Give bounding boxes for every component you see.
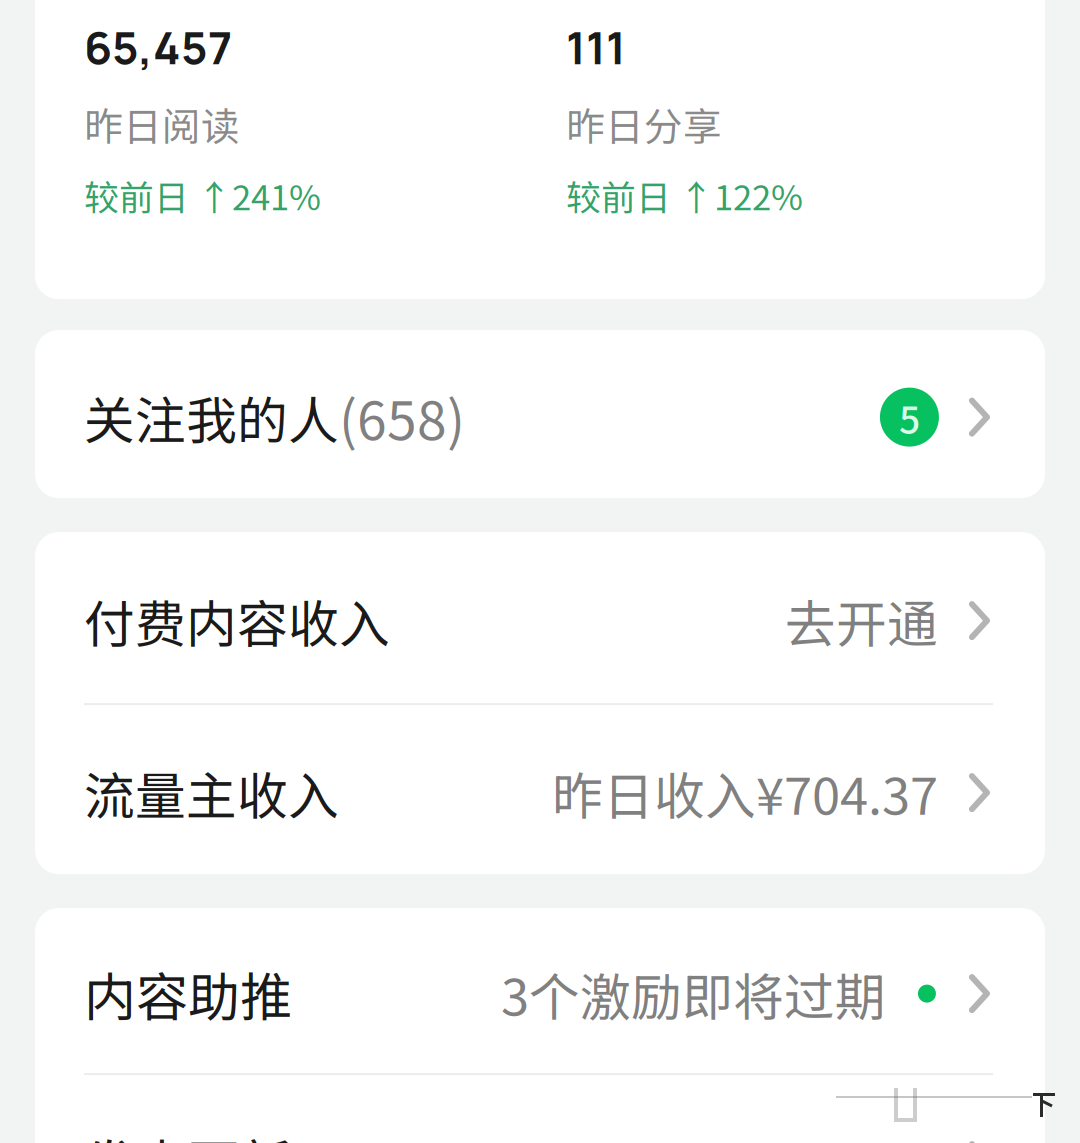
staticText: 内容助推 [84, 956, 292, 1031]
staticText: 较前日 ↑241% [84, 170, 321, 220]
button[interactable]: 内容助推 [35, 908, 1045, 1073]
staticText: 昨日收入¥704.37 [552, 756, 938, 829]
staticText: 关注我的人 [84, 380, 339, 454]
button[interactable]: 付费内容收入 [35, 532, 1045, 703]
staticText: 付费内容收入 [84, 584, 390, 657]
staticText: 3个激励即将过期 [501, 957, 886, 1030]
staticText: (658) [339, 378, 465, 456]
staticText: 流量主收入 [84, 756, 339, 829]
button[interactable]: 发表更新 [35, 1075, 1045, 1143]
button[interactable]: 流量主收入 [35, 705, 1045, 874]
staticText: 较前日 ↑122% [566, 170, 803, 220]
staticText: 昨日分享 [566, 96, 722, 152]
staticText: 昨日阅读 [84, 96, 240, 152]
staticText: 65,457 [84, 16, 232, 78]
button[interactable]: 关注我的人 [35, 330, 1045, 498]
staticText: 去开通 [785, 584, 938, 657]
staticText: 5 [899, 390, 920, 444]
staticText: 111 [566, 16, 626, 78]
staticText: 发表更新 [84, 1123, 292, 1143]
